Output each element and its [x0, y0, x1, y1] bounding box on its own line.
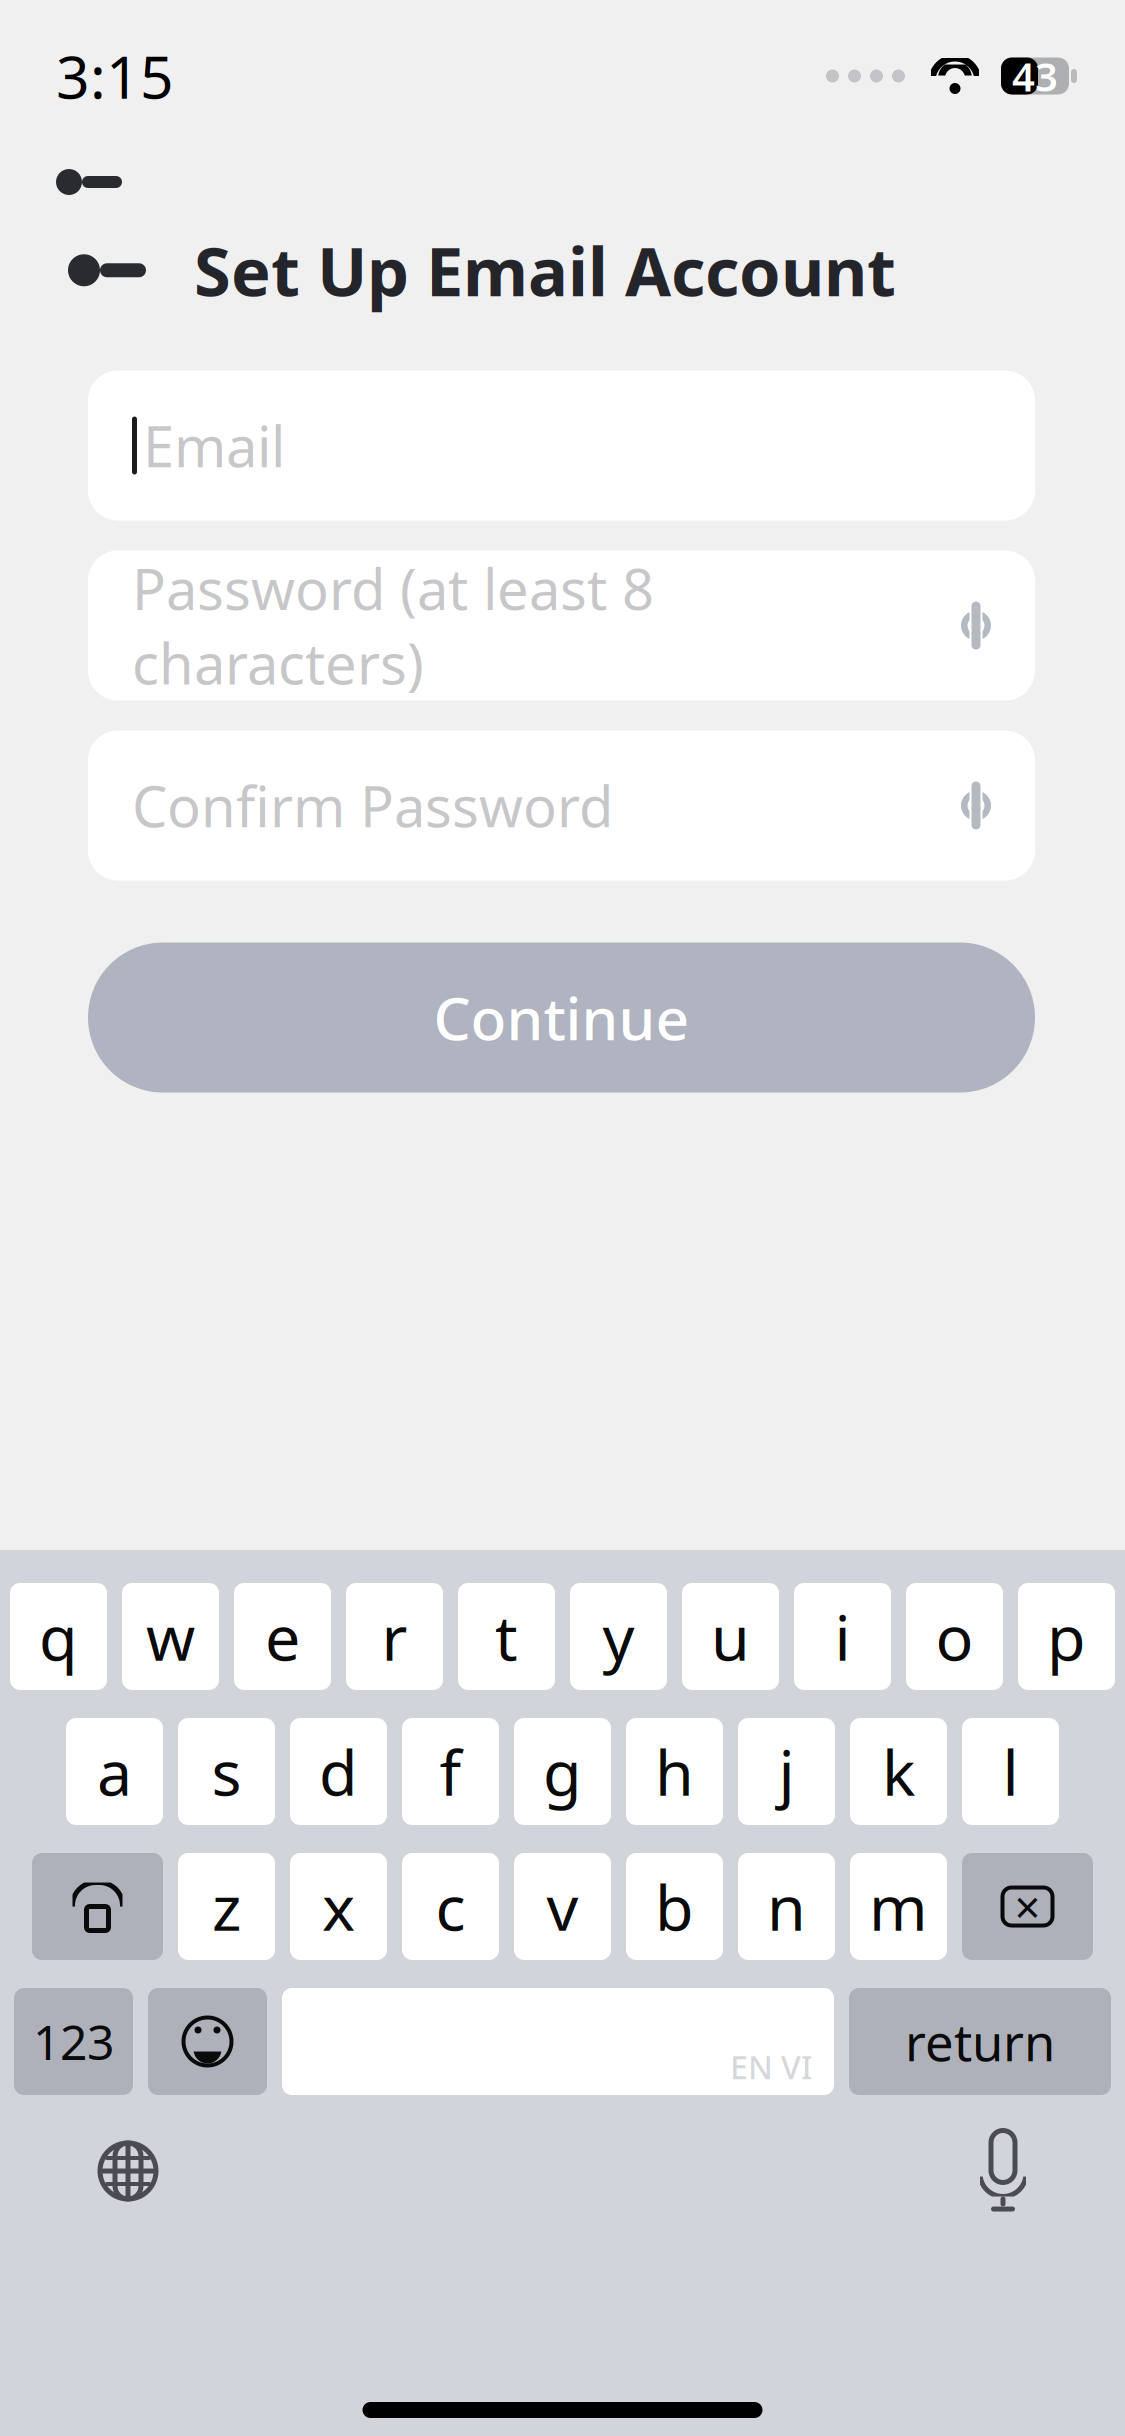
- button[interactable]: Back: [68, 232, 168, 308]
- button[interactable]: l: [962, 1718, 1059, 1825]
- button[interactable]: g: [514, 1718, 611, 1825]
- staticText: Email: [143, 408, 285, 483]
- staticText: ×: [1014, 1876, 1040, 1937]
- button[interactable]: q: [10, 1583, 107, 1690]
- staticText: l: [1002, 1730, 1018, 1813]
- button[interactable]: w: [122, 1583, 219, 1690]
- staticText: Set Up Email Account: [194, 226, 896, 314]
- button[interactable]: b: [626, 1853, 723, 1960]
- staticText: r: [381, 1595, 407, 1678]
- button[interactable]: Emoji: [148, 1988, 267, 2095]
- button[interactable]: Dictate: [979, 2129, 1027, 2213]
- staticText: d: [319, 1730, 358, 1813]
- button[interactable]: s: [178, 1718, 275, 1825]
- staticText: s: [211, 1730, 241, 1813]
- button[interactable]: space: [282, 1988, 834, 2095]
- staticText: n: [767, 1865, 806, 1948]
- button[interactable]: r: [346, 1583, 443, 1690]
- staticText: f: [439, 1730, 461, 1813]
- staticText: p: [1047, 1595, 1086, 1678]
- staticText: y: [602, 1595, 634, 1678]
- staticText: v: [546, 1865, 578, 1948]
- staticText: z: [212, 1865, 241, 1948]
- staticText: o: [935, 1595, 973, 1678]
- button[interactable]: Shift: [32, 1853, 163, 1960]
- button[interactable]: y: [570, 1583, 667, 1690]
- button[interactable]: Confirm Password: [88, 730, 1035, 880]
- staticText: return: [905, 2008, 1055, 2075]
- staticText: j: [778, 1730, 794, 1813]
- button[interactable]: f: [402, 1718, 499, 1825]
- button[interactable]: v: [514, 1853, 611, 1960]
- button[interactable]: 123: [14, 1988, 133, 2095]
- button[interactable]: h: [626, 1718, 723, 1825]
- button[interactable]: d: [290, 1718, 387, 1825]
- button[interactable]: Continue: [88, 942, 1035, 1092]
- staticText: t: [495, 1595, 518, 1678]
- button[interactable]: m: [850, 1853, 947, 1960]
- staticText: 123: [33, 2010, 114, 2073]
- button[interactable]: Email: [88, 370, 1035, 520]
- staticText: g: [543, 1730, 582, 1813]
- staticText: 3:15: [56, 37, 174, 115]
- button[interactable]: n: [738, 1853, 835, 1960]
- button[interactable]: o: [906, 1583, 1003, 1690]
- button[interactable]: e: [234, 1583, 331, 1690]
- staticText: m: [869, 1865, 928, 1948]
- staticText: a: [97, 1730, 132, 1813]
- button[interactable]: a: [66, 1718, 163, 1825]
- staticText: e: [265, 1595, 300, 1678]
- staticText: Password (at least 8 characters): [132, 551, 654, 700]
- staticText: c: [435, 1865, 465, 1948]
- staticText: q: [39, 1595, 78, 1678]
- staticText: x: [322, 1865, 355, 1948]
- button[interactable]: j: [738, 1718, 835, 1825]
- staticText: h: [655, 1730, 694, 1813]
- button[interactable]: t: [458, 1583, 555, 1690]
- button[interactable]: Password (at least 8 characters): [88, 550, 1035, 700]
- staticText: i: [834, 1595, 850, 1678]
- button[interactable]: Delete: [962, 1853, 1093, 1960]
- button[interactable]: Next keyboard: [98, 2141, 158, 2201]
- button[interactable]: z: [178, 1853, 275, 1960]
- button[interactable]: return: [849, 1988, 1111, 2095]
- button[interactable]: c: [402, 1853, 499, 1960]
- staticText: Confirm Password: [132, 768, 613, 843]
- button[interactable]: i: [794, 1583, 891, 1690]
- staticText: w: [146, 1595, 195, 1678]
- staticText: 43: [1012, 49, 1058, 102]
- staticText: EN VI: [730, 2045, 812, 2088]
- button[interactable]: p: [1018, 1583, 1115, 1690]
- button[interactable]: u: [682, 1583, 779, 1690]
- staticText: Continue: [433, 979, 689, 1056]
- button[interactable]: Back: [56, 148, 156, 216]
- staticText: k: [882, 1730, 915, 1813]
- staticText: u: [711, 1595, 750, 1678]
- button[interactable]: k: [850, 1718, 947, 1825]
- button[interactable]: x: [290, 1853, 387, 1960]
- staticText: b: [655, 1865, 694, 1948]
